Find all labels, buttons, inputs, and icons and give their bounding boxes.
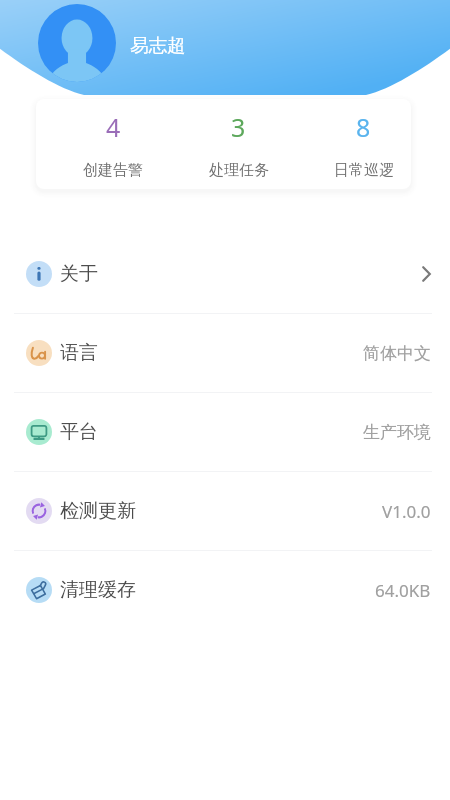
button[interactable]: 语言 [0,314,450,392]
button[interactable]: 8 [301,99,426,189]
button[interactable]: Profile avatar [38,4,116,82]
button[interactable]: 清理缓存 [0,551,450,629]
button[interactable]: 平台 [0,393,450,471]
staticText: 简体中文 [363,343,431,364]
staticText: 检测更新 [60,499,136,523]
staticText: 关于 [60,262,98,286]
staticText: 4 [106,110,121,144]
button[interactable]: 4 [50,99,176,189]
staticText: 64.0KB [375,579,431,602]
staticText: 清理缓存 [60,578,136,602]
staticText: 创建告警 [83,161,143,180]
staticText: 日常巡逻 [334,161,394,180]
staticText: V1.0.0 [382,500,431,523]
button[interactable]: 检测更新 [0,472,450,550]
staticText: 语言 [60,341,98,365]
button[interactable]: 3 [176,99,301,189]
staticText: 生产环境 [363,422,431,443]
button[interactable]: 关于 [0,235,450,313]
staticText: 8 [356,110,371,144]
staticText: 处理任务 [209,161,269,180]
staticText: 平台 [60,420,98,444]
staticText: 3 [231,110,246,144]
staticText: 易志超 [130,34,186,57]
